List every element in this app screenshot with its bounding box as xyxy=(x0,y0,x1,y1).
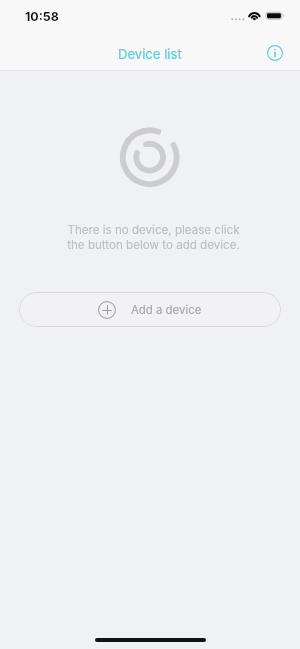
staticText: Add a device xyxy=(131,303,202,317)
button[interactable]: Add a device xyxy=(19,292,281,327)
staticText: There is no device, please click the but… xyxy=(67,223,240,252)
staticText: 10:58 xyxy=(25,9,59,24)
staticText: Device list xyxy=(118,46,182,62)
button[interactable]: Information xyxy=(262,40,287,65)
